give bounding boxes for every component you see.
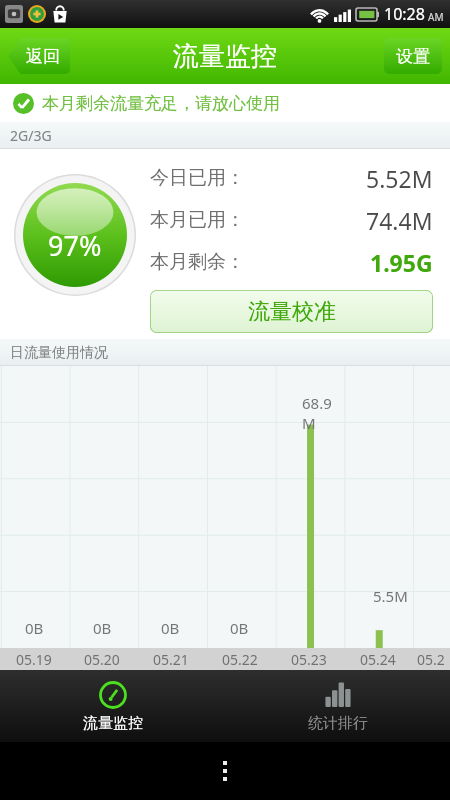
- staticText: 日流量使用情况: [10, 344, 108, 362]
- button[interactable]: 统计排行: [225, 670, 450, 742]
- button[interactable]: 返回: [8, 38, 70, 74]
- staticText: 68.9M: [302, 393, 343, 433]
- staticText: 2G/3G: [10, 126, 52, 145]
- staticText: 05.19: [16, 650, 52, 669]
- staticText: 0B: [93, 618, 112, 638]
- staticText: 统计排行: [308, 714, 368, 733]
- staticText: 0B: [230, 618, 249, 638]
- staticText: 设置: [396, 46, 430, 67]
- staticText: 今日已用：: [150, 166, 245, 190]
- button[interactable]: More options: [217, 755, 233, 787]
- staticText: 返回: [26, 46, 60, 67]
- staticText: 05.20: [84, 650, 120, 669]
- staticText: 流量校准: [248, 298, 336, 326]
- staticText: 74.4M: [366, 205, 433, 236]
- staticText: 1.95G: [370, 247, 433, 278]
- staticText: 5.5M: [373, 586, 408, 606]
- staticText: 流量监控: [83, 714, 143, 733]
- staticText: 本月已用：: [150, 208, 245, 232]
- staticText: AM: [428, 10, 444, 24]
- button[interactable]: 流量监控: [0, 670, 225, 742]
- staticText: 0B: [161, 618, 180, 638]
- staticText: 5.52M: [366, 163, 433, 194]
- staticText: 97%: [48, 227, 102, 264]
- button[interactable]: 流量校准: [150, 290, 433, 333]
- staticText: 10:28: [384, 3, 425, 25]
- staticText: 05.24: [360, 650, 396, 669]
- staticText: 05.22: [222, 650, 258, 669]
- staticText: 05.23: [291, 650, 327, 669]
- staticText: 0B: [25, 618, 44, 638]
- staticText: 05.21: [153, 650, 189, 669]
- staticText: 流量监控: [173, 40, 277, 73]
- staticText: 本月剩余：: [150, 250, 245, 274]
- staticText: 05.2: [417, 650, 445, 669]
- staticText: 本月剩余流量充足，请放心使用: [42, 93, 280, 114]
- button[interactable]: 设置: [384, 38, 442, 74]
